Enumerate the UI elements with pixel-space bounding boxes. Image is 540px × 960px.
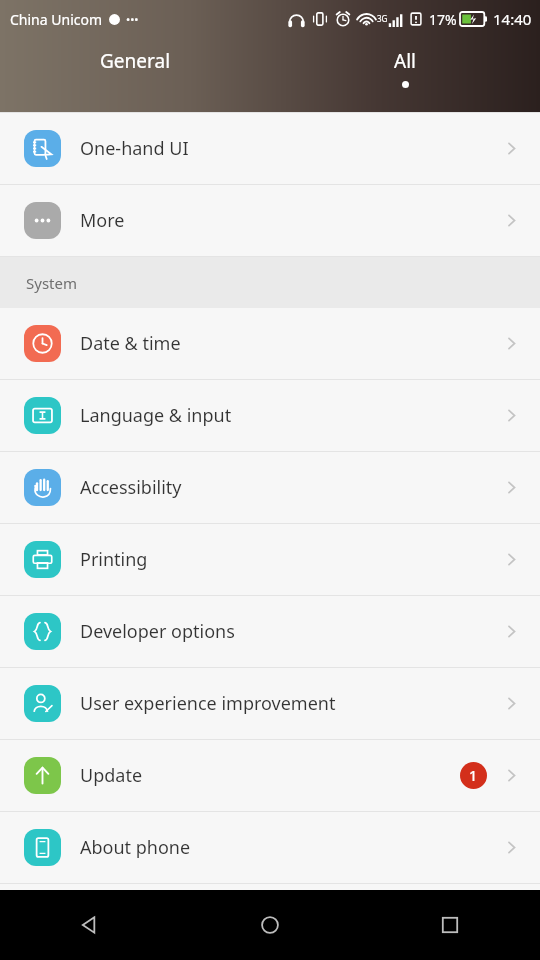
button[interactable]: Update — [0, 740, 540, 811]
button[interactable]: All — [270, 40, 540, 88]
staticText: ••• — [126, 12, 139, 27]
button[interactable]: Home — [180, 890, 360, 960]
staticText: Accessibility — [80, 475, 182, 500]
button[interactable]: Language & input — [0, 380, 540, 451]
button[interactable]: Printing — [0, 524, 540, 595]
staticText: 14:40 — [493, 9, 532, 29]
button[interactable]: User experience improvement — [0, 668, 540, 739]
button[interactable]: General — [0, 40, 270, 81]
staticText: China Unicom — [10, 10, 103, 29]
staticText: More — [80, 208, 125, 233]
button[interactable]: Date & time — [0, 308, 540, 379]
button[interactable]: One-hand UI — [0, 113, 540, 184]
staticText: One-hand UI — [80, 136, 189, 161]
staticText: 17% — [429, 10, 457, 29]
button[interactable]: About phone — [0, 812, 540, 883]
staticText: About phone — [80, 835, 191, 860]
staticText: System — [26, 273, 77, 293]
staticText: User experience improvement — [80, 691, 336, 716]
staticText: All — [394, 48, 416, 74]
staticText: 3G — [377, 13, 388, 24]
button[interactable]: Developer options — [0, 596, 540, 667]
staticText: Developer options — [80, 619, 235, 644]
button[interactable]: More — [0, 185, 540, 256]
staticText: 1 — [469, 766, 478, 785]
staticText: Printing — [80, 547, 148, 572]
staticText: Date & time — [80, 331, 181, 356]
staticText: General — [100, 48, 171, 74]
staticText: Language & input — [80, 403, 232, 428]
staticText: Update — [80, 763, 143, 788]
button[interactable]: Back — [0, 890, 180, 960]
button[interactable]: Accessibility — [0, 452, 540, 523]
button[interactable]: Recent apps — [360, 890, 540, 960]
